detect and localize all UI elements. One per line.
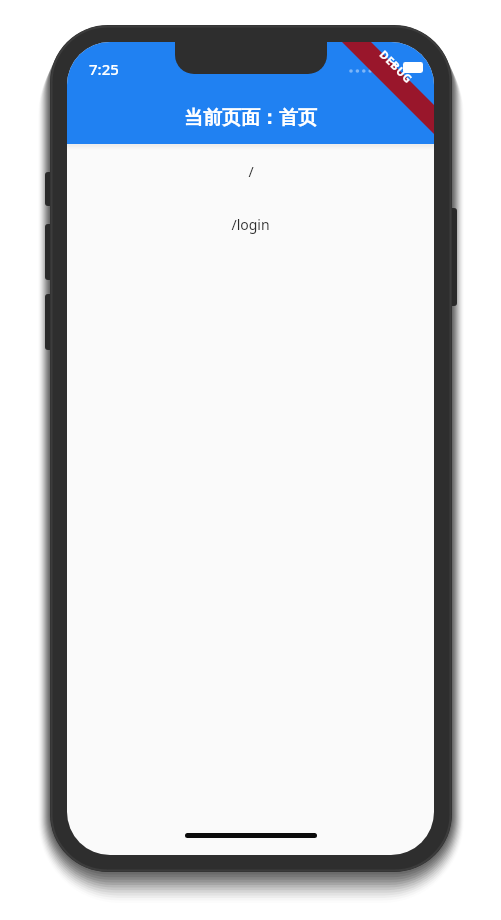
staticText: 7:25 <box>89 59 119 79</box>
staticText: DEBUG <box>377 47 416 86</box>
button[interactable]: /login <box>215 211 286 238</box>
staticText: /login <box>231 215 270 234</box>
other: Debug banner <box>334 42 434 142</box>
staticText: 当前页面：首页 <box>184 106 317 130</box>
staticText: / <box>248 162 254 181</box>
button[interactable]: / <box>232 158 270 185</box>
